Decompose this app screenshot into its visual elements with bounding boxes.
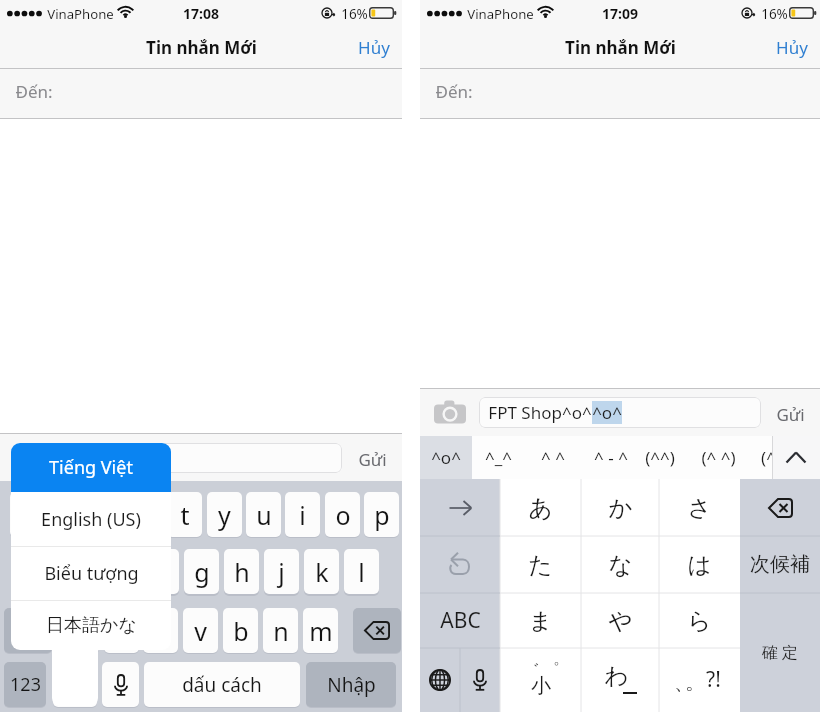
- button[interactable]: Undo: [420, 536, 500, 593]
- button[interactable]: Biểu tượng: [11, 547, 171, 600]
- staticText: は: [687, 550, 712, 580]
- button[interactable]: w: [49, 492, 84, 537]
- staticText: 、: [674, 670, 694, 695]
- button[interactable]: Switch keyboard: [53, 662, 97, 707]
- button[interactable]: (^ ^): [690, 436, 746, 479]
- button[interactable]: か: [581, 479, 659, 536]
- button[interactable]: x: [104, 608, 139, 653]
- button[interactable]: l: [344, 549, 379, 594]
- staticText: u: [256, 498, 272, 532]
- staticText: 123: [10, 672, 41, 697]
- button[interactable]: た: [500, 536, 581, 593]
- button[interactable]: ^_^: [470, 436, 526, 479]
- button[interactable]: 、: [659, 648, 740, 712]
- button[interactable]: Backspace: [353, 608, 401, 653]
- button[interactable]: さ: [659, 479, 740, 536]
- staticText: y: [218, 498, 231, 532]
- button[interactable]: な: [581, 536, 659, 593]
- button[interactable]: ^o^: [420, 436, 472, 479]
- button[interactable]: は: [659, 536, 740, 593]
- staticText: Tin nhắn Mới: [146, 36, 257, 59]
- button[interactable]: [500, 648, 581, 712]
- staticText: ゛: [522, 660, 540, 681]
- staticText: 。: [685, 670, 705, 695]
- button[interactable]: z: [64, 608, 99, 653]
- button[interactable]: g: [184, 549, 219, 594]
- button[interactable]: FPT Shop^o^: [479, 397, 761, 428]
- staticText: 小: [531, 673, 551, 698]
- button[interactable]: ま: [500, 593, 581, 648]
- button[interactable]: Camera: [432, 398, 468, 426]
- button[interactable]: q: [10, 492, 45, 537]
- button[interactable]: Arrow right: [420, 479, 500, 536]
- staticText: w: [57, 498, 77, 532]
- button[interactable]: Dictation: [102, 662, 139, 707]
- button[interactable]: Hủy: [764, 30, 820, 65]
- button[interactable]: 小: [500, 648, 581, 712]
- button[interactable]: Hủy: [346, 30, 402, 65]
- button[interactable]: ^ - ^: [583, 436, 639, 479]
- button[interactable]: m: [303, 608, 338, 653]
- button[interactable]: や: [581, 593, 659, 648]
- button[interactable]: ら: [659, 593, 740, 648]
- button[interactable]: [659, 648, 740, 712]
- button[interactable]: k: [304, 549, 339, 594]
- staticText: s: [76, 555, 88, 589]
- button[interactable]: Gửi: [352, 442, 393, 477]
- staticText: English (US): [41, 507, 141, 532]
- button[interactable]: b: [223, 608, 258, 653]
- staticText: g: [194, 555, 210, 589]
- button[interactable]: 次候補: [740, 536, 820, 593]
- button[interactable]: Expand suggestions: [772, 436, 820, 479]
- button[interactable]: d: [104, 549, 139, 594]
- button[interactable]: ABC: [420, 593, 500, 648]
- button[interactable]: Dictation: [460, 648, 500, 712]
- button[interactable]: n: [263, 608, 298, 653]
- staticText: (^: [761, 446, 776, 469]
- staticText: 確定: [760, 643, 800, 663]
- button[interactable]: s: [64, 549, 99, 594]
- button[interactable]: Tiếng Việt: [11, 443, 171, 492]
- button[interactable]: Switch keyboard: [420, 648, 460, 712]
- staticText: Biểu tượng: [44, 561, 139, 586]
- button[interactable]: h: [224, 549, 259, 594]
- staticText: FPT Shop^o^: [488, 401, 592, 424]
- button[interactable]: (^^): [632, 436, 688, 479]
- button[interactable]: Shift: [4, 608, 52, 653]
- button[interactable]: あ: [500, 479, 581, 536]
- button[interactable]: e: [88, 492, 123, 537]
- button[interactable]: 確定: [740, 593, 820, 712]
- button[interactable]: (^: [740, 436, 796, 479]
- staticText: な: [608, 550, 633, 580]
- button[interactable]: Backspace: [740, 479, 820, 536]
- staticText: 17:08: [183, 4, 219, 23]
- staticText: Tiếng Việt: [49, 455, 133, 480]
- button[interactable]: 123: [4, 662, 46, 707]
- button[interactable]: 日本語かな: [11, 601, 171, 650]
- button[interactable]: Gửi: [770, 397, 811, 432]
- button[interactable]: Nhập: [306, 662, 396, 707]
- button[interactable]: p: [364, 492, 399, 537]
- button[interactable]: f: [144, 549, 179, 594]
- button[interactable]: j: [264, 549, 299, 594]
- button[interactable]: t: [167, 492, 202, 537]
- button[interactable]: c: [143, 608, 178, 653]
- staticText: Hủy: [358, 36, 390, 59]
- button[interactable]: r: [128, 492, 163, 537]
- staticText: o: [335, 498, 351, 532]
- button[interactable]: v: [183, 608, 218, 653]
- button[interactable]: English (US): [11, 492, 171, 546]
- button[interactable]: [48, 443, 342, 473]
- button[interactable]: わ: [581, 648, 659, 712]
- other: Rotation lock: [741, 6, 755, 20]
- button[interactable]: y: [207, 492, 242, 537]
- button[interactable]: i: [285, 492, 320, 537]
- button[interactable]: dấu cách: [144, 662, 300, 707]
- button[interactable]: o: [325, 492, 360, 537]
- button[interactable]: [581, 648, 659, 712]
- button[interactable]: ^ ^: [525, 436, 581, 479]
- button[interactable]: u: [246, 492, 281, 537]
- button[interactable]: a: [24, 549, 59, 594]
